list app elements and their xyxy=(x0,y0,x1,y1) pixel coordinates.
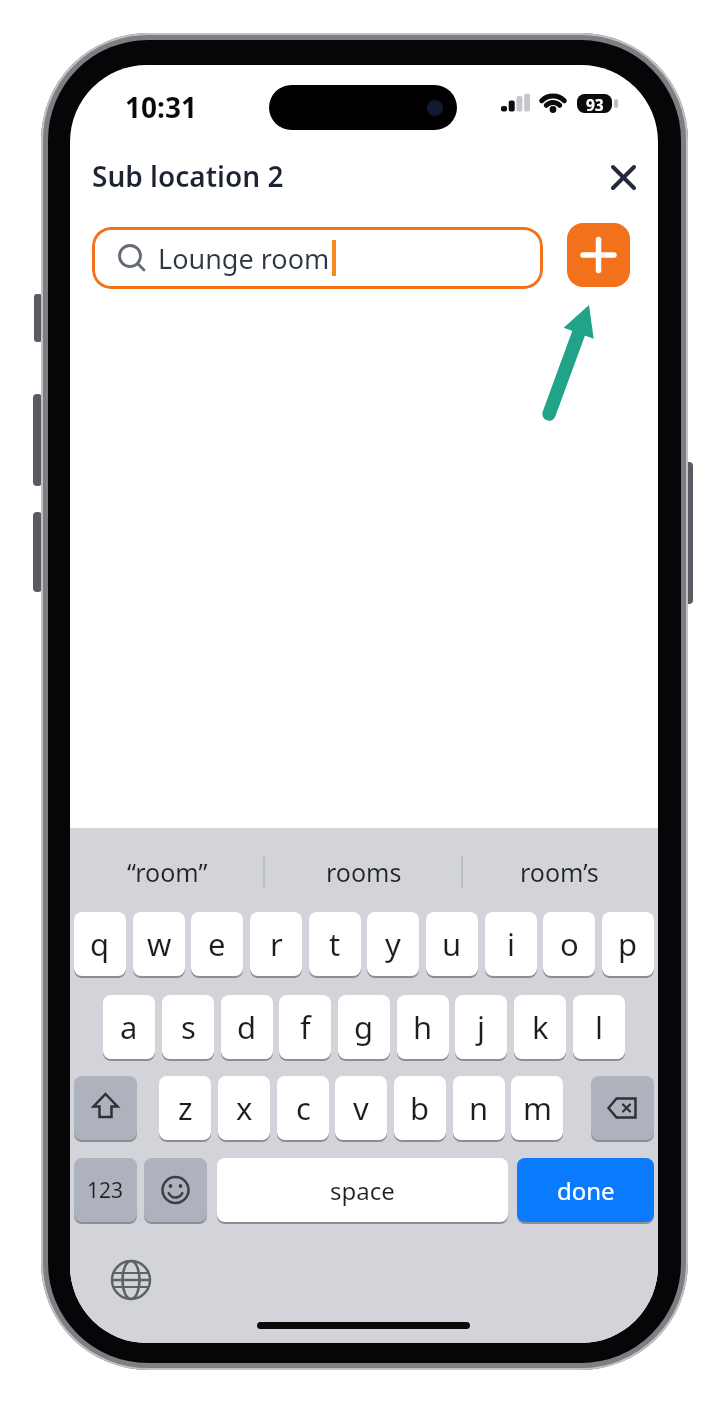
button[interactable]: b xyxy=(394,1076,446,1140)
button[interactable]: j xyxy=(455,995,507,1059)
button[interactable] xyxy=(74,1076,137,1140)
staticText: i xyxy=(507,923,515,965)
button[interactable]: rooms xyxy=(284,854,444,890)
button[interactable]: k xyxy=(514,995,566,1059)
staticText: Sub location 2 xyxy=(92,157,284,195)
staticText: z xyxy=(178,1087,193,1129)
button[interactable]: v xyxy=(335,1076,387,1140)
button[interactable]: x xyxy=(218,1076,270,1140)
staticText: y xyxy=(385,923,401,965)
staticText: n xyxy=(469,1087,489,1129)
button[interactable] xyxy=(606,160,642,196)
staticText: j xyxy=(477,1006,485,1048)
button[interactable]: 123 xyxy=(74,1158,137,1222)
staticText: f xyxy=(300,1006,311,1048)
staticText: k xyxy=(532,1006,549,1048)
button[interactable]: i xyxy=(485,912,537,976)
button[interactable]: w xyxy=(133,912,185,976)
staticText: m xyxy=(523,1087,552,1129)
button[interactable]: t xyxy=(309,912,361,976)
staticText: g xyxy=(354,1006,374,1048)
button[interactable]: room’s xyxy=(479,854,639,890)
button[interactable]: done xyxy=(517,1158,654,1222)
button[interactable]: a xyxy=(103,995,155,1059)
staticText: a xyxy=(120,1006,138,1048)
staticText: p xyxy=(618,923,638,965)
staticText: d xyxy=(237,1006,257,1048)
staticText: e xyxy=(208,923,226,965)
button[interactable]: g xyxy=(338,995,390,1059)
staticText: v xyxy=(353,1087,369,1129)
button[interactable]: y xyxy=(367,912,419,976)
button[interactable]: l xyxy=(573,995,625,1059)
button[interactable]: h xyxy=(397,995,449,1059)
staticText: t xyxy=(329,923,341,965)
staticText: space xyxy=(330,1174,395,1207)
button[interactable]: f xyxy=(279,995,331,1059)
staticText: b xyxy=(410,1087,430,1129)
button[interactable]: u xyxy=(426,912,478,976)
staticText: x xyxy=(236,1087,253,1129)
button[interactable]: m xyxy=(511,1076,563,1140)
button[interactable] xyxy=(144,1158,207,1222)
button[interactable]: space xyxy=(217,1158,508,1222)
staticText: q xyxy=(90,923,110,965)
button[interactable]: z xyxy=(159,1076,211,1140)
staticText: Lounge room xyxy=(158,240,330,277)
staticText: c xyxy=(296,1087,311,1129)
staticText: w xyxy=(147,923,172,965)
staticText: 10:31 xyxy=(125,88,197,126)
button[interactable]: q xyxy=(74,912,126,976)
staticText: s xyxy=(181,1006,196,1048)
button[interactable]: r xyxy=(250,912,302,976)
button[interactable]: Lounge room xyxy=(92,227,543,289)
button[interactable]: e xyxy=(191,912,243,976)
staticText: rooms xyxy=(326,855,402,889)
button[interactable]: o xyxy=(543,912,595,976)
button[interactable]: c xyxy=(277,1076,329,1140)
button[interactable]: d xyxy=(221,995,273,1059)
staticText: 123 xyxy=(87,1176,124,1205)
staticText: done xyxy=(557,1174,615,1207)
button[interactable]: “room” xyxy=(87,854,247,890)
staticText: 93 xyxy=(586,94,604,113)
button[interactable] xyxy=(591,1076,654,1140)
staticText: l xyxy=(595,1006,603,1048)
staticText: r xyxy=(270,923,283,965)
button[interactable]: s xyxy=(162,995,214,1059)
staticText: “room” xyxy=(127,855,208,889)
staticText: u xyxy=(442,923,462,965)
staticText: room’s xyxy=(520,855,599,889)
button[interactable] xyxy=(567,223,630,287)
staticText: o xyxy=(560,923,579,965)
button[interactable]: p xyxy=(602,912,654,976)
staticText: h xyxy=(413,1006,433,1048)
button[interactable]: n xyxy=(453,1076,505,1140)
